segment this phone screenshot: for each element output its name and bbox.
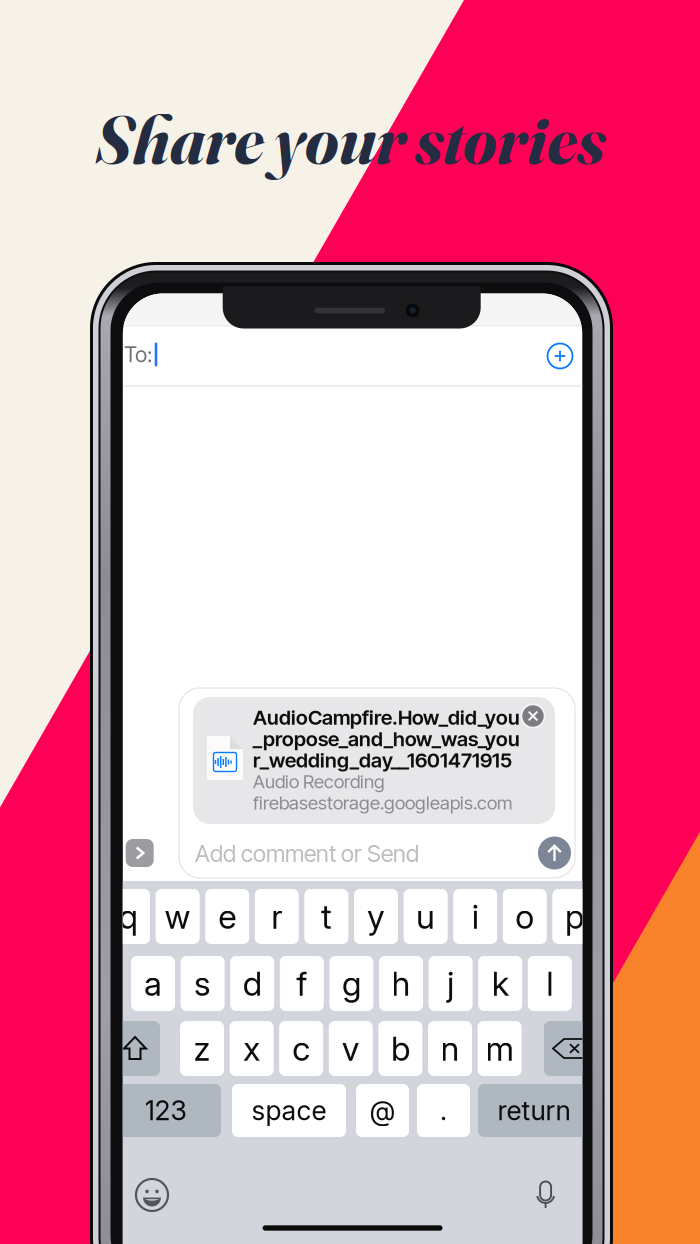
button[interactable]: g xyxy=(329,956,373,1011)
staticText: q xyxy=(118,896,137,937)
staticText: l xyxy=(546,963,553,1004)
staticText: u xyxy=(416,896,435,937)
button[interactable]: More options xyxy=(126,839,154,867)
button[interactable]: d xyxy=(230,956,274,1011)
button[interactable]: Emoji xyxy=(135,1178,169,1212)
button[interactable]: t xyxy=(304,889,348,944)
staticText: t xyxy=(321,896,332,937)
staticText: p xyxy=(565,896,584,937)
button[interactable]: u xyxy=(404,889,448,944)
button[interactable]: Dictation xyxy=(530,1179,562,1211)
button[interactable]: p xyxy=(552,889,596,944)
staticText: o xyxy=(515,896,534,937)
staticText: d xyxy=(243,963,262,1004)
button[interactable]: y xyxy=(354,889,398,944)
staticText: _propose_and_how_was_you xyxy=(253,726,520,751)
button[interactable]: . xyxy=(417,1084,470,1137)
staticText: i xyxy=(472,896,479,937)
staticText: b xyxy=(391,1028,410,1069)
staticText: k xyxy=(492,963,509,1004)
button[interactable]: z xyxy=(180,1021,224,1076)
button[interactable]: Shift xyxy=(110,1021,160,1076)
button[interactable]: return xyxy=(478,1084,590,1137)
button[interactable]: q xyxy=(106,889,150,944)
button[interactable]: Delete xyxy=(544,1021,594,1076)
button[interactable]: b xyxy=(378,1021,422,1076)
staticText: firebasestorage.googleapis.com xyxy=(253,791,512,814)
staticText: Add comment or Send xyxy=(195,839,419,868)
staticText: y xyxy=(367,896,385,937)
staticText: c xyxy=(292,1028,310,1069)
button[interactable]: x xyxy=(230,1021,274,1076)
button[interactable]: 123 xyxy=(110,1084,221,1137)
staticText: j xyxy=(447,963,454,1004)
staticText: m xyxy=(486,1028,514,1069)
staticText: @ xyxy=(369,1094,395,1127)
button[interactable]: s xyxy=(181,956,225,1011)
button[interactable]: @ xyxy=(356,1084,409,1137)
button[interactable]: h xyxy=(379,956,423,1011)
staticText: r xyxy=(271,896,282,937)
button[interactable]: v xyxy=(329,1021,373,1076)
staticText: . xyxy=(440,1094,447,1127)
staticText: space xyxy=(251,1094,326,1127)
staticText: f xyxy=(296,963,307,1004)
staticText: x xyxy=(243,1028,260,1069)
staticText: g xyxy=(342,963,361,1004)
button[interactable]: o xyxy=(503,889,547,944)
staticText: n xyxy=(440,1028,459,1069)
button[interactable]: n xyxy=(428,1021,472,1076)
staticText: v xyxy=(342,1028,360,1069)
button[interactable]: f xyxy=(280,956,324,1011)
button[interactable]: Add recipient xyxy=(538,334,582,378)
button[interactable]: k xyxy=(478,956,522,1011)
button[interactable]: Send xyxy=(538,836,571,869)
staticText: To: xyxy=(124,342,152,367)
button[interactable]: r xyxy=(255,889,299,944)
button[interactable]: i xyxy=(453,889,497,944)
staticText: w xyxy=(165,896,191,937)
staticText: return xyxy=(497,1094,570,1127)
staticText: s xyxy=(194,963,211,1004)
button[interactable]: m xyxy=(478,1021,522,1076)
button[interactable]: Remove attachment xyxy=(516,699,550,733)
staticText: h xyxy=(391,963,410,1004)
staticText: r_wedding_day__1601471915 xyxy=(253,748,512,772)
button[interactable]: c xyxy=(279,1021,323,1076)
staticText: a xyxy=(144,963,162,1004)
button[interactable]: space xyxy=(232,1084,346,1137)
staticText: 123 xyxy=(144,1094,186,1127)
button[interactable]: w xyxy=(156,889,200,944)
staticText: AudioCampfire.How_did_you xyxy=(253,705,520,730)
button[interactable]: j xyxy=(429,956,473,1011)
staticText: Audio Recording xyxy=(253,770,385,793)
staticText: e xyxy=(218,896,236,937)
button[interactable]: l xyxy=(528,956,572,1011)
button[interactable]: e xyxy=(205,889,249,944)
button[interactable]: a xyxy=(131,956,175,1011)
staticText: Share your stories xyxy=(95,97,605,181)
staticText: z xyxy=(193,1028,210,1069)
